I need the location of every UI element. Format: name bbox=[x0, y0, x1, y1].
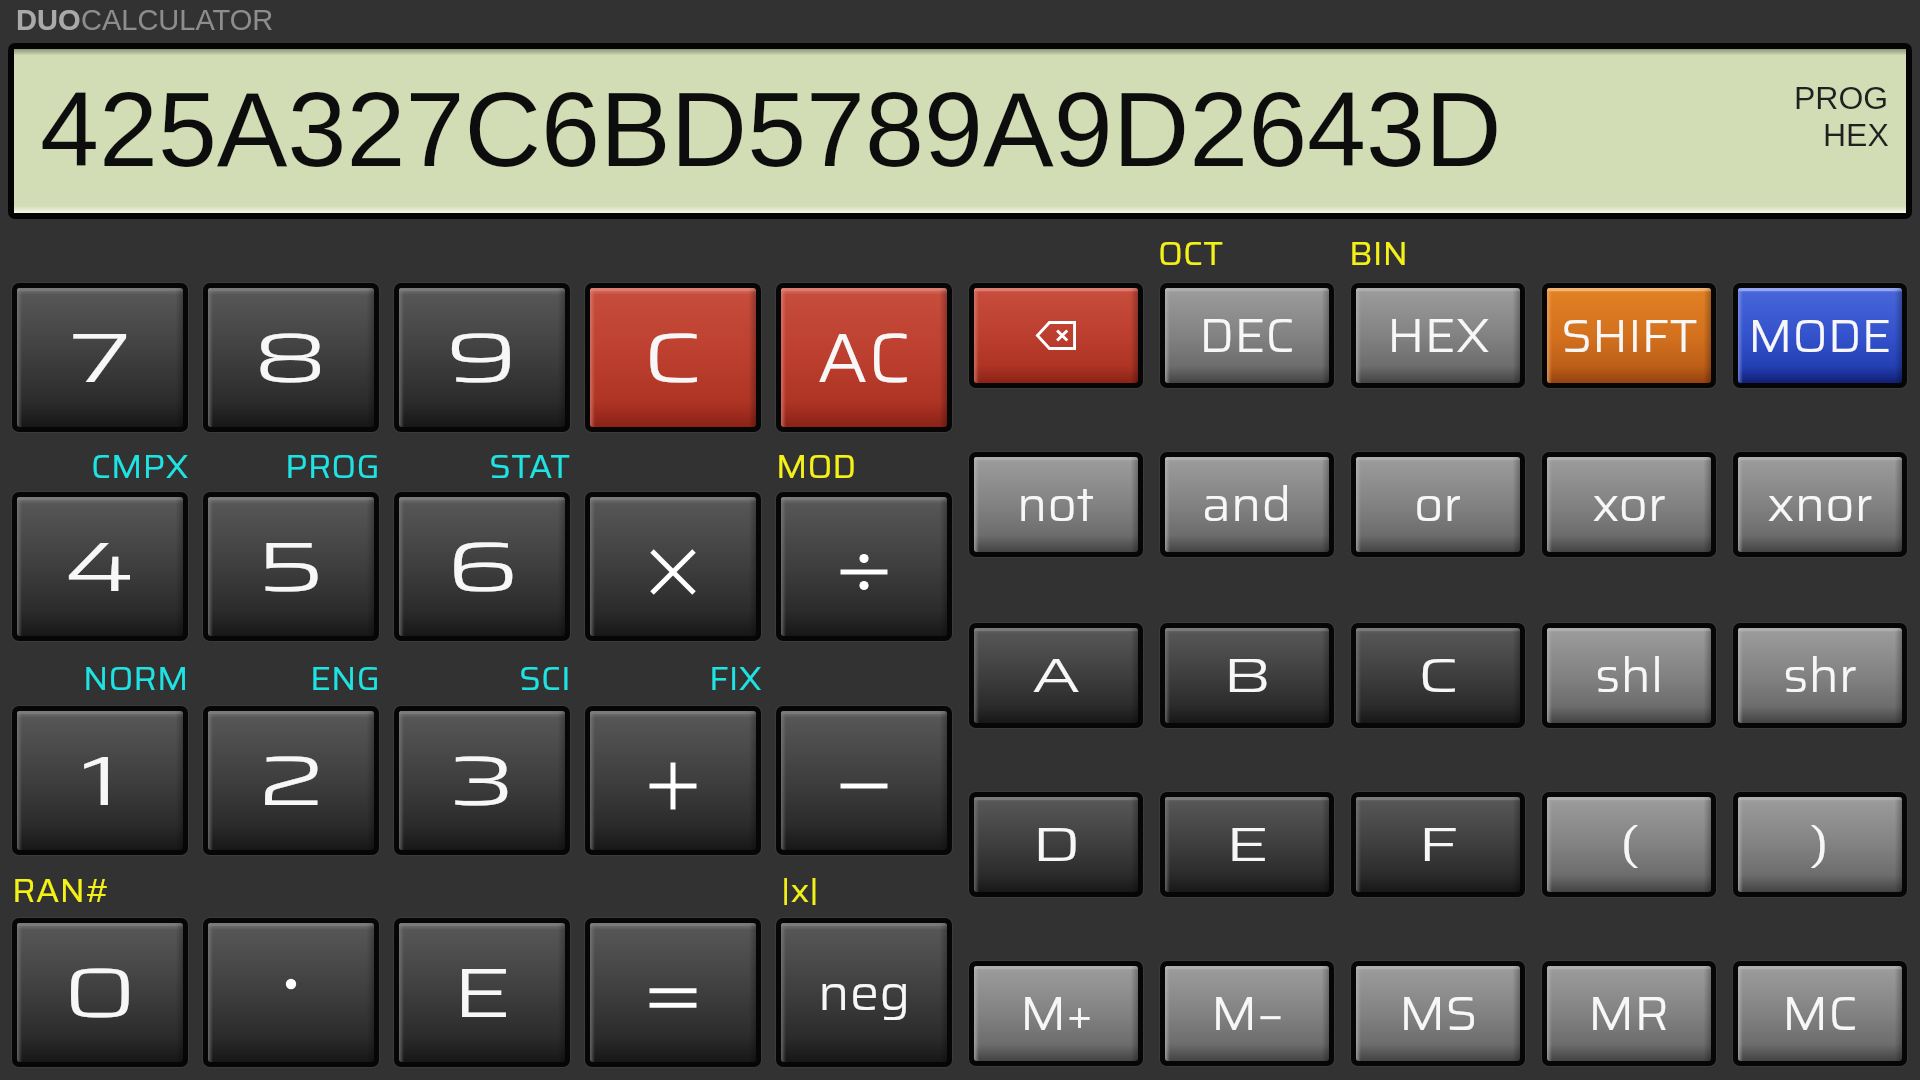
button[interactable]: M+ bbox=[969, 961, 1143, 1066]
staticText: PROG bbox=[285, 441, 380, 481]
staticText: OCT bbox=[1158, 228, 1224, 268]
button[interactable]: shl bbox=[1542, 623, 1716, 728]
staticText: M− bbox=[1211, 976, 1284, 1052]
staticText: xor bbox=[1592, 467, 1667, 543]
staticText: HEX bbox=[1387, 298, 1490, 374]
staticText: 1 bbox=[79, 726, 122, 836]
button[interactable]: MC bbox=[1733, 961, 1907, 1066]
staticText: 425A327C6BD5789A9D2643D bbox=[40, 70, 1502, 188]
staticText: 3 bbox=[448, 726, 517, 836]
button[interactable]: AC bbox=[776, 283, 952, 432]
staticText: NORM bbox=[83, 653, 189, 693]
button[interactable]: and bbox=[1160, 452, 1334, 557]
button[interactable]: 4 bbox=[12, 492, 188, 641]
staticText: FIX bbox=[709, 653, 762, 693]
button[interactable]: SHIFT bbox=[1542, 283, 1716, 388]
staticText: ENG bbox=[310, 653, 380, 693]
staticText: C bbox=[1417, 638, 1460, 714]
button[interactable]: 9 bbox=[394, 283, 570, 432]
staticText: MR bbox=[1588, 976, 1670, 1052]
button[interactable]: 2 bbox=[203, 706, 379, 855]
staticText: PROG bbox=[1794, 80, 1889, 116]
button[interactable]: E bbox=[394, 918, 570, 1067]
button[interactable]: 5 bbox=[203, 492, 379, 641]
staticText: not bbox=[1017, 467, 1095, 543]
button[interactable]: E bbox=[1160, 792, 1334, 897]
staticText: 6 bbox=[445, 512, 520, 622]
staticText: 4 bbox=[63, 512, 137, 622]
button[interactable]: MODE bbox=[1733, 283, 1907, 388]
button[interactable]: ) bbox=[1733, 792, 1907, 897]
staticText: 9 bbox=[445, 303, 520, 413]
staticText: ) bbox=[1809, 807, 1831, 883]
staticText: STAT bbox=[489, 441, 571, 481]
button[interactable]: M− bbox=[1160, 961, 1334, 1066]
button[interactable]: F bbox=[1351, 792, 1525, 897]
button[interactable] bbox=[585, 918, 761, 1067]
staticText: 2 bbox=[257, 726, 326, 836]
button[interactable] bbox=[585, 706, 761, 855]
staticText: F bbox=[1417, 807, 1459, 883]
staticText: xnor bbox=[1767, 467, 1873, 543]
button[interactable]: not bbox=[969, 452, 1143, 557]
staticText: DUO bbox=[16, 4, 81, 36]
button[interactable] bbox=[203, 918, 379, 1067]
button[interactable]: C bbox=[1351, 623, 1525, 728]
staticText: |x| bbox=[781, 865, 819, 905]
staticText: CALCULATOR bbox=[81, 4, 274, 36]
button[interactable]: D bbox=[969, 792, 1143, 897]
button[interactable]: 1 bbox=[12, 706, 188, 855]
staticText: or bbox=[1414, 467, 1462, 543]
button[interactable] bbox=[585, 492, 761, 641]
staticText: ( bbox=[1618, 807, 1640, 883]
button[interactable]: 6 bbox=[394, 492, 570, 641]
button[interactable]: A bbox=[969, 623, 1143, 728]
button[interactable] bbox=[776, 492, 952, 641]
button[interactable]: 0 bbox=[12, 918, 188, 1067]
button[interactable]: neg bbox=[776, 918, 952, 1067]
staticText: A bbox=[1031, 638, 1082, 714]
staticText: HEX bbox=[1823, 117, 1889, 153]
staticText: 7 bbox=[68, 303, 132, 413]
staticText: CMPX bbox=[91, 441, 189, 481]
button[interactable]: shr bbox=[1733, 623, 1907, 728]
button[interactable]: or bbox=[1351, 452, 1525, 557]
staticText: SHIFT bbox=[1561, 300, 1698, 372]
staticText: RAN# bbox=[12, 865, 112, 905]
button[interactable]: 3 bbox=[394, 706, 570, 855]
button[interactable]: MR bbox=[1542, 961, 1716, 1066]
staticText: E bbox=[451, 938, 512, 1048]
button[interactable]: ( bbox=[1542, 792, 1716, 897]
staticText: neg bbox=[818, 953, 911, 1032]
button[interactable]: 7 bbox=[12, 283, 188, 432]
staticText: MS bbox=[1399, 976, 1478, 1052]
staticText: M+ bbox=[1020, 976, 1093, 1052]
button[interactable]: DEC bbox=[1160, 283, 1334, 388]
button[interactable]: Backspace bbox=[969, 283, 1143, 388]
staticText: and bbox=[1202, 467, 1292, 543]
button[interactable]: C bbox=[585, 283, 761, 432]
staticText: B bbox=[1222, 638, 1273, 714]
staticText: MODE bbox=[1748, 300, 1892, 372]
button[interactable]: B bbox=[1160, 623, 1334, 728]
button[interactable]: 8 bbox=[203, 283, 379, 432]
staticText: C bbox=[642, 303, 704, 413]
staticText: 5 bbox=[256, 512, 326, 622]
staticText: shr bbox=[1783, 638, 1858, 714]
staticText: SCI bbox=[519, 653, 571, 693]
staticText: MC bbox=[1782, 976, 1859, 1052]
button[interactable]: xor bbox=[1542, 452, 1716, 557]
button[interactable]: MS bbox=[1351, 961, 1525, 1066]
button[interactable] bbox=[776, 706, 952, 855]
staticText: D bbox=[1031, 807, 1082, 883]
button[interactable]: HEX bbox=[1351, 283, 1525, 388]
staticText: shl bbox=[1595, 638, 1664, 714]
staticText: DEC bbox=[1199, 298, 1295, 374]
staticText: 8 bbox=[252, 303, 330, 413]
staticText: 0 bbox=[62, 938, 139, 1048]
staticText: MOD bbox=[776, 441, 857, 481]
staticText: AC bbox=[817, 303, 912, 413]
staticText: BIN bbox=[1349, 228, 1408, 268]
button[interactable]: xnor bbox=[1733, 452, 1907, 557]
staticText: E bbox=[1225, 807, 1269, 883]
